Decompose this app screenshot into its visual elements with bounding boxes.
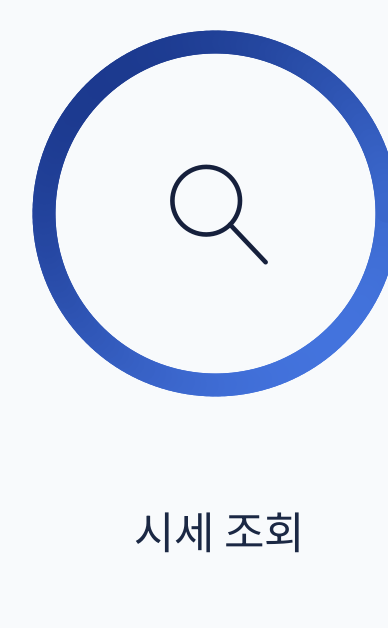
staticText: 시세 조회	[134, 497, 304, 561]
button[interactable]: 시세 조회	[0, 0, 388, 628]
